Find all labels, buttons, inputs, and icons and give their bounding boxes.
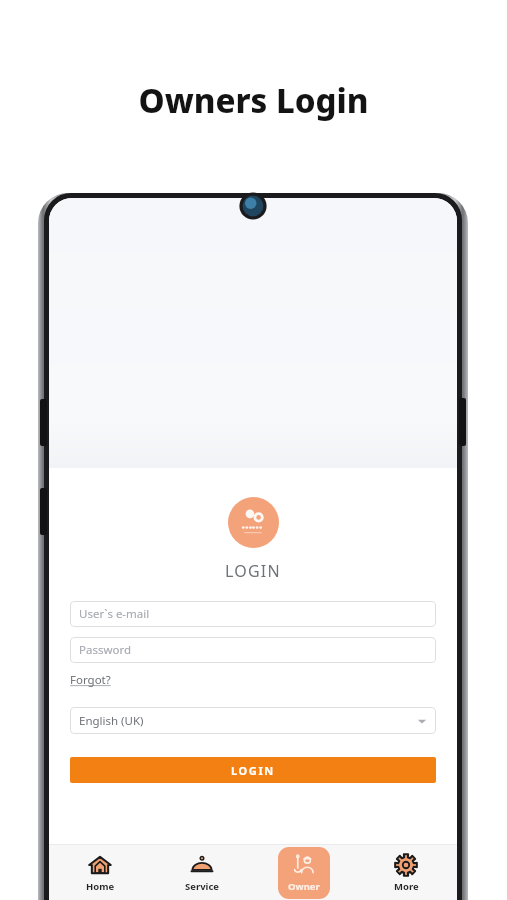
- staticText: Owner: [288, 880, 320, 893]
- button[interactable]: Home: [74, 847, 126, 899]
- button[interactable]: More: [380, 847, 432, 899]
- staticText: LOGIN: [231, 763, 275, 778]
- staticText: More: [394, 880, 419, 893]
- button[interactable]: User`s e-mail: [70, 601, 436, 627]
- staticText: Service: [185, 880, 219, 893]
- staticText: Home: [86, 880, 115, 893]
- button[interactable]: Forgot?: [70, 672, 111, 688]
- staticText: Forgot?: [70, 672, 111, 688]
- button[interactable]: LOGIN: [70, 757, 436, 783]
- staticText: Password: [79, 642, 132, 658]
- button[interactable]: Password: [70, 637, 436, 663]
- staticText: Owners Login: [138, 78, 369, 123]
- button[interactable]: Owner: [278, 847, 330, 899]
- staticText: User`s e-mail: [79, 606, 150, 622]
- button[interactable]: English (UK): [70, 707, 436, 734]
- staticText: English (UK): [79, 713, 144, 729]
- button[interactable]: Service: [176, 847, 228, 899]
- staticText: LOGIN: [225, 560, 281, 582]
